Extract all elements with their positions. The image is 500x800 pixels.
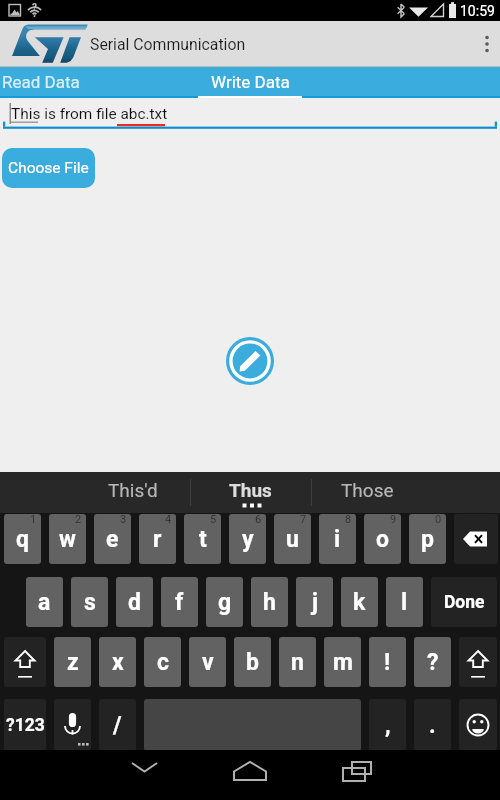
- button[interactable]: Those: [312, 472, 422, 513]
- button[interactable]: b: [234, 637, 271, 687]
- button[interactable]: !: [369, 637, 406, 687]
- staticText: This'd: [108, 479, 158, 501]
- button[interactable]: r: [139, 514, 176, 564]
- staticText: q: [16, 526, 29, 553]
- staticText: a: [38, 589, 51, 616]
- button[interactable]: h: [251, 577, 288, 627]
- staticText: h: [263, 589, 276, 616]
- button[interactable]: y: [229, 514, 266, 564]
- staticText: s: [84, 589, 96, 616]
- staticText: 2: [75, 514, 82, 526]
- staticText: 7: [300, 514, 307, 526]
- staticText: ,: [385, 712, 391, 739]
- button[interactable]: Shift: [459, 637, 497, 687]
- button[interactable]: Back: [104, 750, 184, 800]
- button[interactable]: l: [386, 577, 423, 627]
- staticText: b: [246, 649, 259, 676]
- button[interactable]: w: [49, 514, 86, 564]
- staticText: Read Data: [2, 72, 80, 92]
- button[interactable]: Backspace: [454, 514, 498, 564]
- button[interactable]: o: [364, 514, 401, 564]
- button[interactable]: x: [99, 637, 136, 687]
- staticText: ?: [427, 649, 439, 676]
- staticText: !: [384, 649, 391, 676]
- staticText: j: [312, 589, 318, 616]
- button[interactable]: z: [54, 637, 91, 687]
- button[interactable]: f: [161, 577, 198, 627]
- button[interactable]: p: [409, 514, 446, 564]
- staticText: 5: [210, 514, 217, 526]
- button[interactable]: j: [296, 577, 333, 627]
- button[interactable]: ,: [369, 699, 406, 751]
- button[interactable]: e: [94, 514, 131, 564]
- button[interactable]: Recents: [317, 750, 397, 800]
- button[interactable]: /: [99, 699, 136, 751]
- staticText: k: [353, 589, 366, 616]
- staticText: d: [128, 589, 141, 616]
- staticText: 6: [255, 514, 262, 526]
- button[interactable]: Done: [431, 577, 497, 627]
- button[interactable]: This'd: [78, 472, 188, 513]
- button[interactable]: u: [274, 514, 311, 564]
- button[interactable]: ?123: [4, 699, 46, 751]
- button[interactable]: i: [319, 514, 356, 564]
- staticText: ?123: [6, 715, 45, 736]
- button[interactable]: d: [116, 577, 153, 627]
- button[interactable]: Emoji: [459, 699, 497, 751]
- button[interactable]: k: [341, 577, 378, 627]
- button[interactable]: Write Data: [198, 67, 302, 96]
- staticText: c: [157, 649, 169, 676]
- staticText: p: [421, 526, 434, 553]
- button[interactable]: q: [4, 514, 41, 564]
- button[interactable]: t: [184, 514, 221, 564]
- staticText: i: [334, 526, 341, 553]
- staticText: 10:59: [460, 3, 495, 19]
- button[interactable]: g: [206, 577, 243, 627]
- staticText: 1: [30, 514, 37, 526]
- button[interactable]: m: [324, 637, 361, 687]
- button[interactable]: n: [279, 637, 316, 687]
- staticText: Done: [444, 592, 485, 613]
- staticText: /: [113, 712, 122, 739]
- button[interactable]: a: [26, 577, 63, 627]
- staticText: 4: [165, 514, 172, 526]
- staticText: Write Data: [211, 72, 290, 92]
- button[interactable]: c: [144, 637, 181, 687]
- staticText: u: [286, 526, 299, 553]
- button[interactable]: Thus: [195, 472, 305, 513]
- staticText: Those: [341, 479, 394, 501]
- staticText: y: [242, 526, 254, 553]
- button[interactable]: More options: [466, 21, 500, 67]
- button[interactable]: .: [414, 699, 451, 751]
- staticText: .: [429, 712, 436, 739]
- staticText: 8: [345, 514, 352, 526]
- button[interactable]: s: [71, 577, 108, 627]
- staticText: w: [59, 526, 76, 553]
- button[interactable]: Edit: [226, 337, 274, 385]
- staticText: Choose File: [8, 159, 89, 177]
- button[interactable]: Choose File: [2, 148, 95, 188]
- staticText: o: [376, 526, 389, 553]
- button[interactable]: Home: [210, 750, 290, 800]
- staticText: n: [291, 649, 304, 676]
- staticText: v: [202, 649, 214, 676]
- button[interactable]: Read Data: [0, 67, 198, 96]
- staticText: Thus: [229, 479, 272, 501]
- button[interactable]: v: [189, 637, 226, 687]
- staticText: z: [67, 649, 79, 676]
- staticText: 9: [390, 514, 397, 526]
- button[interactable]: Shift: [4, 637, 46, 687]
- staticText: x: [112, 649, 124, 676]
- staticText: l: [401, 589, 408, 616]
- button[interactable]: Voice input: [54, 699, 91, 751]
- button[interactable]: Space: [144, 699, 361, 751]
- staticText: r: [153, 526, 162, 553]
- staticText: e: [106, 526, 119, 553]
- staticText: t: [199, 526, 207, 553]
- staticText: m: [333, 649, 353, 676]
- staticText: 0: [435, 514, 442, 526]
- staticText: Serial Communication: [90, 35, 246, 54]
- staticText: f: [175, 589, 184, 616]
- button[interactable]: ?: [414, 637, 451, 687]
- staticText: g: [218, 589, 232, 616]
